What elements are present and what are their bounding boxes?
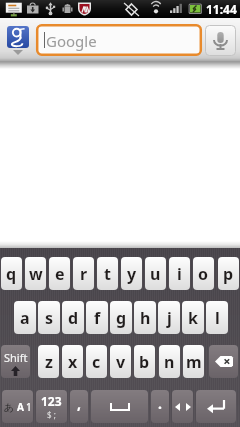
staticText: 11:44 [206,1,237,17]
staticText: e [55,263,65,285]
button[interactable]: j [158,301,180,334]
button[interactable]: y [121,257,142,290]
button[interactable]: e [49,257,70,290]
staticText: . [158,394,162,413]
staticText: g [116,307,127,329]
staticText: f [94,307,101,329]
button[interactable]: k [182,301,204,334]
staticText: 1 [26,400,32,414]
button[interactable]: x [62,345,83,378]
button[interactable]: i [169,257,190,290]
staticText: z [45,351,53,373]
button[interactable]: Voice search [205,25,236,56]
button[interactable]: f [86,301,108,334]
button[interactable]: s [38,301,60,334]
button[interactable]: comma [70,390,88,423]
staticText: A [17,400,24,414]
button[interactable]: h [134,301,156,334]
staticText: Shift [4,350,28,365]
button[interactable]: num [36,390,67,423]
button[interactable]: t [97,257,118,290]
staticText: h [140,307,151,329]
staticText: a [20,307,30,329]
button[interactable]: enter [196,390,236,423]
button[interactable]: z [38,345,59,378]
button[interactable]: g [110,301,132,334]
button[interactable]: o [193,257,214,290]
staticText: j [167,307,172,329]
staticText: i [177,263,182,285]
staticText: s [45,307,54,329]
staticText: u [150,263,161,285]
button[interactable]: Google [36,24,202,56]
button[interactable]: Search provider [0,18,30,61]
staticText: , [77,394,81,413]
staticText: c [92,351,101,373]
button[interactable]: arrows [172,390,193,423]
staticText: v [116,351,126,373]
button[interactable]: lang [2,390,33,423]
button[interactable]: r [73,257,94,290]
button[interactable]: period [151,390,169,423]
staticText: $ ; [47,409,56,420]
button[interactable]: b [134,345,155,378]
button[interactable]: del [209,345,238,378]
button[interactable]: c [86,345,107,378]
staticText: 123 [41,393,62,409]
staticText: d [68,307,79,329]
staticText: o [198,263,209,285]
button[interactable]: q [1,257,22,290]
staticText: r [80,263,88,285]
staticText: w [29,263,43,285]
button[interactable]: Shift [1,345,30,378]
button[interactable]: a [14,301,36,334]
button[interactable]: u [145,257,166,290]
staticText: b [139,351,150,373]
staticText: p [223,263,234,285]
button[interactable]: d [62,301,84,334]
button[interactable]: v [110,345,131,378]
staticText: Google [46,31,97,51]
staticText: t [104,263,111,285]
staticText: q [6,263,17,285]
button[interactable]: m [183,345,204,378]
staticText: あ [4,401,15,414]
button[interactable]: l [206,301,228,334]
button[interactable]: n [159,345,180,378]
button[interactable]: p [218,257,239,290]
staticText: l [215,307,220,329]
button[interactable]: w [25,257,46,290]
staticText: m [186,351,202,373]
button[interactable]: space [91,390,148,423]
staticText: x [68,351,78,373]
staticText: k [188,307,198,329]
staticText: n [164,351,175,373]
staticText: y [127,263,137,285]
